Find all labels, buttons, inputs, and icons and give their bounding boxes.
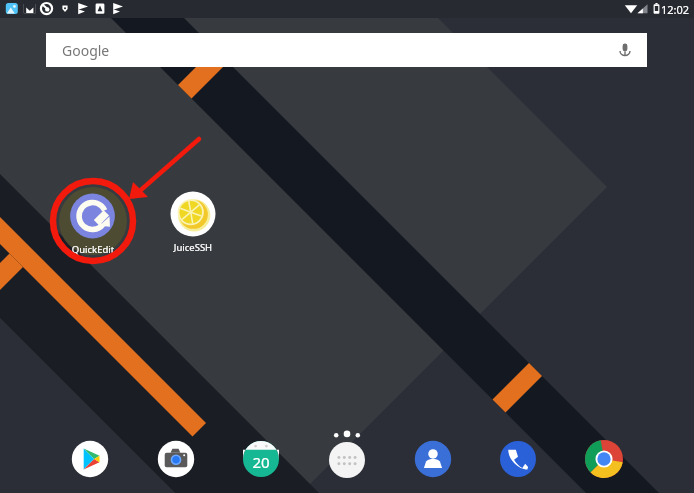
staticText: Google: [62, 41, 110, 60]
staticText: JuiceSSH: [153, 241, 233, 254]
staticText: 12:02: [661, 2, 690, 17]
button[interactable]: Camera: [155, 438, 197, 480]
button[interactable]: Calendar: [240, 438, 282, 480]
button[interactable]: All apps: [326, 438, 368, 480]
button[interactable]: [63, 190, 123, 254]
button[interactable]: Google: [46, 33, 647, 67]
staticText: 20: [241, 452, 281, 472]
button[interactable]: [163, 188, 223, 252]
staticText: QuickEdit: [53, 243, 133, 256]
button[interactable]: Play Store: [69, 438, 111, 480]
button[interactable]: Phone: [497, 438, 539, 480]
button[interactable]: Contacts: [412, 438, 454, 480]
button[interactable]: Chrome: [583, 438, 625, 480]
